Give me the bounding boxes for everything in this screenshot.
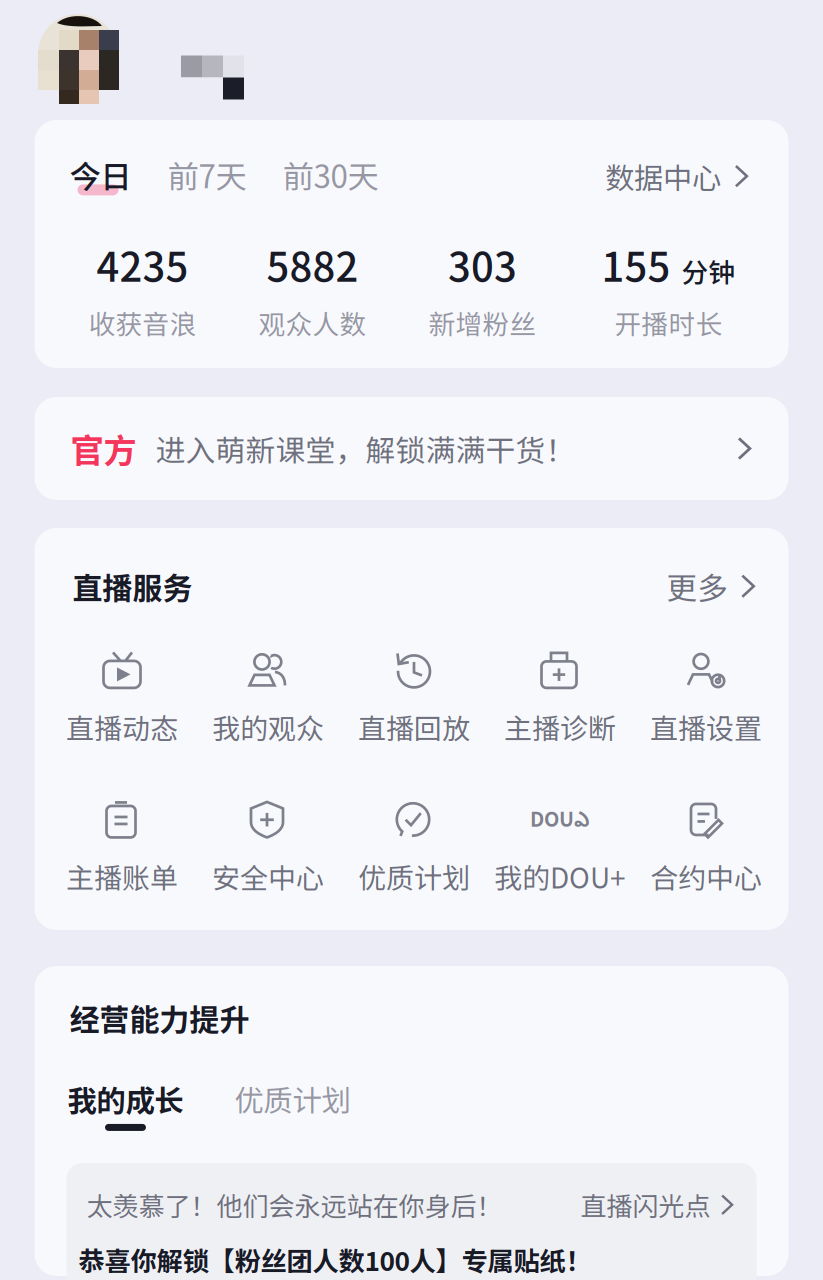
- staticText: 5882: [266, 235, 358, 293]
- staticText: 新增粉丝: [428, 303, 536, 342]
- staticText: 直播闪光点: [580, 1186, 710, 1223]
- staticText: 今日: [69, 152, 131, 197]
- staticText: 经营能力提升: [69, 996, 249, 1039]
- button[interactable]: 前30天: [246, 152, 378, 197]
- staticText: DOUఎ: [530, 803, 590, 836]
- staticText: 分钟: [681, 252, 735, 290]
- staticText: 收获音浪: [88, 303, 196, 342]
- staticText: 4235: [96, 235, 188, 293]
- staticText: 直播设置: [650, 706, 762, 747]
- staticText: 前7天: [167, 152, 246, 197]
- button[interactable]: 更多: [666, 564, 756, 608]
- staticText: 我的DOU+: [494, 856, 626, 896]
- staticText: 主播诊断: [504, 706, 616, 747]
- staticText: 前30天: [282, 152, 378, 197]
- button[interactable]: 数据中心: [605, 155, 749, 197]
- staticText: 官方: [70, 424, 136, 473]
- staticText: 开播时长: [614, 303, 722, 342]
- staticText: 合约中心: [650, 856, 762, 896]
- button[interactable]: 优质计划: [183, 1077, 350, 1120]
- button[interactable]: 我的观众: [195, 648, 341, 747]
- staticText: 155: [601, 235, 670, 293]
- staticText: 数据中心: [605, 155, 721, 197]
- button[interactable]: 主播诊断: [487, 648, 633, 747]
- button[interactable]: 直播设置: [633, 648, 779, 747]
- staticText: 直播回放: [358, 706, 470, 747]
- staticText: 优质计划: [358, 856, 470, 896]
- staticText: 更多: [666, 564, 728, 608]
- staticText: 太羡慕了！他们会永远站在你身后！: [86, 1186, 502, 1223]
- staticText: 我的观众: [212, 706, 324, 747]
- staticText: 进入萌新课堂，解锁满满干货！: [155, 427, 575, 470]
- button[interactable]: 合约中心: [633, 798, 779, 896]
- staticText: 直播动态: [66, 706, 178, 747]
- staticText: 安全中心: [212, 856, 324, 896]
- staticText: 直播服务: [72, 564, 192, 608]
- staticText: 主播账单: [66, 856, 178, 896]
- button[interactable]: 优质计划: [341, 798, 487, 896]
- button[interactable]: 今日: [69, 152, 131, 197]
- button[interactable]: 官方: [34, 397, 788, 500]
- staticText: 我的成长: [67, 1077, 183, 1120]
- button[interactable]: 主播账单: [49, 798, 195, 896]
- button[interactable]: 我的成长: [67, 1077, 183, 1131]
- button[interactable]: 安全中心: [195, 798, 341, 896]
- staticText: 恭喜你解锁【粉丝团人数100人】专属贴纸！: [78, 1241, 591, 1279]
- staticText: 优质计划: [234, 1077, 350, 1120]
- staticText: 观众人数: [258, 303, 366, 342]
- button[interactable]: 前7天: [131, 152, 246, 197]
- staticText: 303: [448, 235, 517, 293]
- button[interactable]: 直播回放: [341, 648, 487, 747]
- button[interactable]: 直播动态: [49, 648, 195, 747]
- button[interactable]: DOUఎ: [487, 798, 633, 896]
- button[interactable]: 直播闪光点: [580, 1186, 734, 1223]
